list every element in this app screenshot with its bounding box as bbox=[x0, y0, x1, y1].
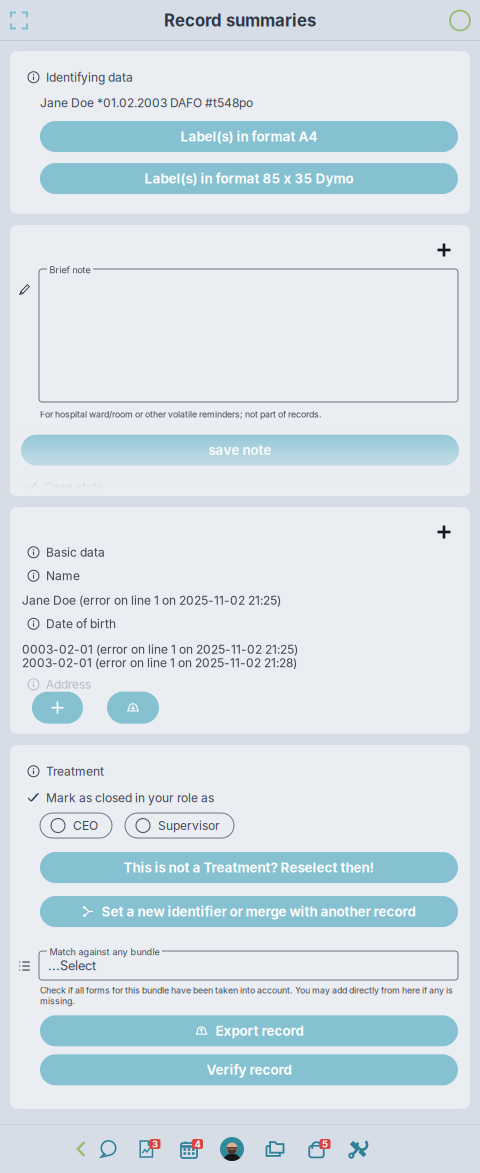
button[interactable]: Add address bbox=[32, 692, 83, 724]
button[interactable]: Profile bbox=[210, 1132, 254, 1166]
staticText: Name bbox=[46, 568, 80, 583]
staticText: This is not a Treatment? Reselect then! bbox=[123, 859, 374, 876]
button[interactable]: Add basic data bbox=[431, 519, 457, 545]
staticText: save note bbox=[208, 442, 271, 458]
staticText: Jane Doe (error on line 1 on 2025-11-02 … bbox=[22, 593, 281, 607]
staticText: Record summaries bbox=[164, 10, 316, 31]
staticText: Label(s) in format 85 x 35 Dymo bbox=[144, 170, 353, 187]
button[interactable]: This is not a Treatment? Reselect then! bbox=[40, 852, 458, 883]
button[interactable]: Tools bbox=[337, 1132, 379, 1166]
button[interactable]: Supervisor bbox=[125, 813, 234, 838]
button[interactable]: Back bbox=[70, 1132, 92, 1166]
staticText: Brief note bbox=[49, 264, 90, 275]
button[interactable]: Export record bbox=[40, 1015, 458, 1046]
button[interactable]: Messages bbox=[92, 1132, 125, 1166]
staticText: Treatment bbox=[46, 764, 104, 778]
staticText: 3 bbox=[152, 1138, 158, 1150]
button[interactable]: save note bbox=[21, 435, 459, 466]
button[interactable]: Import address bbox=[107, 692, 159, 724]
staticText: 2003-02-01 (error on line 1 on 2025-11-0… bbox=[22, 656, 297, 670]
button[interactable]: Scan bbox=[1, 2, 37, 38]
staticText: Verify record bbox=[206, 1062, 291, 1078]
staticText: 0003-02-01 (error on line 1 on 2025-11-0… bbox=[22, 642, 298, 657]
staticText: Match against any bundle bbox=[49, 946, 159, 957]
button[interactable]: Verify record bbox=[40, 1054, 458, 1085]
staticText: Export record bbox=[215, 1023, 303, 1039]
staticText: 4 bbox=[194, 1138, 200, 1150]
staticText: For hospital ward/room or other volatile… bbox=[40, 409, 322, 420]
button[interactable]: Set a new identifier or merge with anoth… bbox=[40, 896, 458, 927]
staticText: 5 bbox=[322, 1138, 328, 1150]
staticText: Case state bbox=[44, 480, 104, 494]
button[interactable]: CEO bbox=[40, 813, 112, 838]
button[interactable]: Files bbox=[254, 1132, 296, 1166]
button[interactable]: Calendar bbox=[168, 1132, 210, 1166]
staticText: Identifying data bbox=[46, 70, 133, 84]
staticText: Supervisor bbox=[158, 818, 220, 833]
staticText: Date of birth bbox=[46, 617, 116, 631]
button[interactable]: Documents bbox=[125, 1132, 168, 1166]
staticText: Check if all forms for this bundle have … bbox=[40, 985, 453, 1006]
staticText: Basic data bbox=[46, 545, 105, 559]
button[interactable]: Orders bbox=[296, 1132, 337, 1166]
staticText: Set a new identifier or merge with anoth… bbox=[101, 903, 415, 920]
staticText: Address bbox=[46, 677, 91, 692]
staticText: CEO bbox=[73, 818, 98, 833]
staticText: ...Select bbox=[48, 958, 96, 973]
staticText: Jane Doe *01.02.2003 DAFO #t548po bbox=[40, 95, 253, 110]
staticText: Mark as closed in your role as bbox=[46, 790, 214, 805]
staticText: Label(s) in format A4 bbox=[180, 128, 317, 145]
button[interactable]: Record status bbox=[442, 2, 478, 38]
button[interactable]: Label(s) in format 85 x 35 Dymo bbox=[40, 163, 458, 194]
button[interactable]: Label(s) in format A4 bbox=[40, 121, 458, 152]
button[interactable]: Add note bbox=[431, 237, 457, 263]
